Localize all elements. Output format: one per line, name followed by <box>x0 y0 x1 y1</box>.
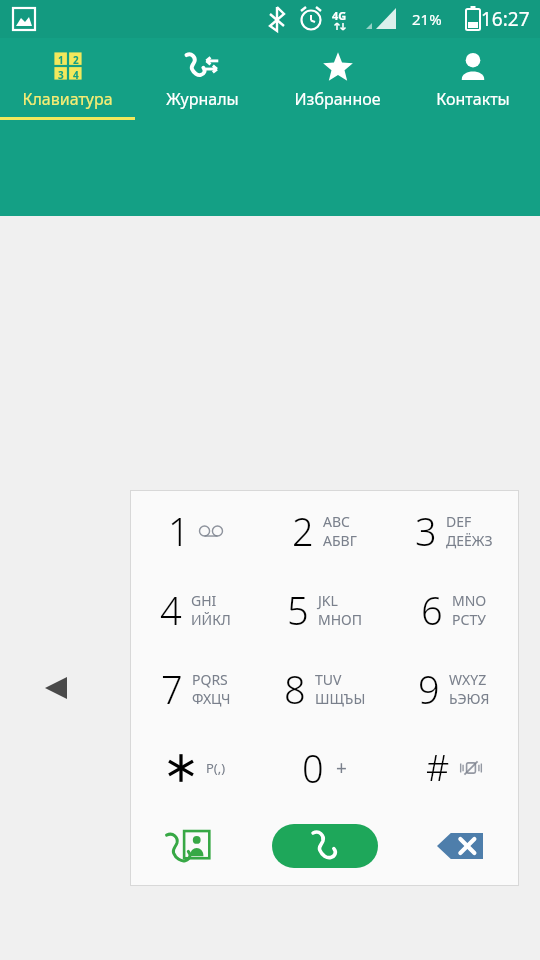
button[interactable]: 8 <box>260 649 389 728</box>
staticText: 4 <box>73 68 79 81</box>
button[interactable]: Add to contacts <box>131 807 249 885</box>
staticText: 2 <box>73 53 79 66</box>
staticText: GHI <box>191 591 217 610</box>
staticText: 0 <box>302 742 324 794</box>
staticText: P(,) <box>206 759 226 777</box>
button[interactable]: 1 <box>131 491 260 570</box>
staticText: ДЕЁЖЗ <box>446 531 493 550</box>
staticText: ABC <box>323 512 350 531</box>
staticText: 9 <box>418 663 440 715</box>
staticText: ФХЦЧ <box>192 689 231 708</box>
staticText: 1 <box>58 53 64 66</box>
staticText: АБВГ <box>323 531 357 550</box>
button[interactable]: 6 <box>389 570 518 649</box>
staticText: ИЙКЛ <box>191 610 231 629</box>
button[interactable]: Контакты <box>405 38 540 133</box>
button[interactable]: Журналы <box>135 38 270 133</box>
staticText: 5 <box>287 584 309 636</box>
button[interactable]: 9 <box>389 649 518 728</box>
staticText: 16:27 <box>481 6 530 32</box>
button[interactable]: P(,) <box>131 728 260 807</box>
button[interactable]: Back <box>40 672 72 704</box>
staticText: ЬЭЮЯ <box>449 689 490 708</box>
staticText: # <box>426 743 450 792</box>
staticText: Контакты <box>436 88 510 110</box>
button[interactable]: 3 <box>389 491 518 570</box>
button[interactable]: Call <box>272 824 378 868</box>
staticText: 21% <box>412 9 442 29</box>
staticText: WXYZ <box>449 670 487 689</box>
button[interactable]: 1 <box>0 38 135 133</box>
staticText: 3 <box>58 68 64 81</box>
button[interactable]: 5 <box>260 570 389 649</box>
button[interactable]: Избранное <box>270 38 405 133</box>
button[interactable]: 0 <box>260 728 389 807</box>
staticText: МНОП <box>318 610 363 629</box>
staticText: Клавиатура <box>22 88 113 110</box>
staticText: 1 <box>168 505 190 557</box>
staticText: PQRS <box>192 670 228 689</box>
staticText: Избранное <box>294 88 381 110</box>
button[interactable]: 4 <box>131 570 260 649</box>
staticText: 3 <box>415 505 437 557</box>
staticText: 6 <box>421 584 443 636</box>
staticText: 8 <box>284 663 306 715</box>
staticText: JKL <box>318 591 338 610</box>
button[interactable]: Backspace <box>401 807 518 885</box>
staticText: 7 <box>161 663 183 715</box>
staticText: ШЩЪЫ <box>315 689 366 708</box>
staticText: Журналы <box>166 88 239 110</box>
staticText: 4G <box>332 8 347 23</box>
button[interactable]: # <box>389 728 518 807</box>
button[interactable]: 2 <box>260 491 389 570</box>
staticText: MNO <box>452 591 487 610</box>
staticText: 4 <box>160 584 182 636</box>
button[interactable]: 7 <box>131 649 260 728</box>
staticText: 2 <box>292 505 314 557</box>
staticText: DEF <box>446 512 472 531</box>
staticText: TUV <box>315 670 342 689</box>
staticText: РСТУ <box>452 610 486 629</box>
staticText: + <box>336 755 347 781</box>
